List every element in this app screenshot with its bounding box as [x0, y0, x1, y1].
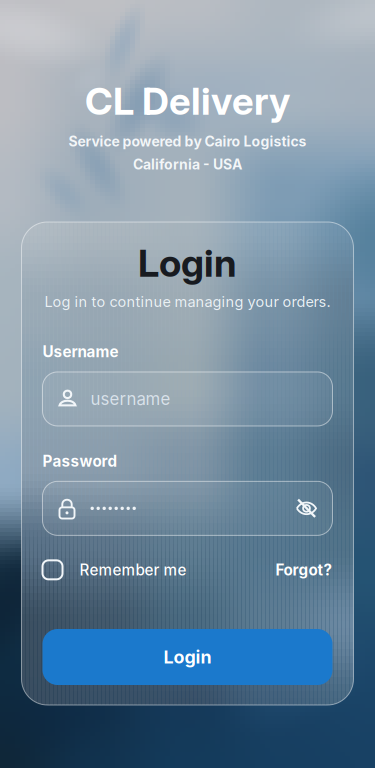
staticText: username — [90, 389, 170, 409]
staticText: California - USA — [133, 156, 242, 173]
staticText: Log in to continue managing your orders. — [44, 293, 330, 311]
staticText: Login — [138, 240, 237, 286]
staticText: Forgot? — [275, 561, 332, 579]
staticText: CL Delivery — [85, 78, 290, 124]
staticText: Service powered by Cairo Logistics — [68, 133, 306, 150]
button[interactable]: Forgot? — [275, 561, 332, 579]
button[interactable]: Remember me — [42, 560, 186, 579]
staticText: Password — [42, 452, 117, 470]
staticText: Remember me — [79, 561, 186, 579]
button[interactable]: Login — [42, 629, 332, 685]
staticText: Login — [163, 646, 211, 668]
button[interactable]: Show password — [286, 482, 326, 534]
button[interactable]: username — [42, 372, 332, 426]
staticText: Username — [42, 343, 118, 361]
